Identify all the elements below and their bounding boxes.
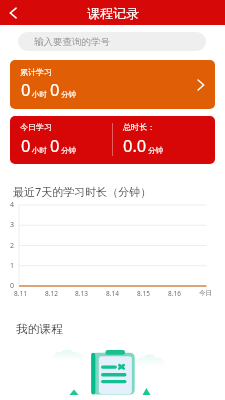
staticText: 2	[10, 241, 15, 251]
staticText: 8.14	[106, 289, 119, 298]
staticText: 分钟	[61, 90, 76, 99]
button[interactable]: 输入要查询的学号	[18, 32, 206, 51]
button[interactable]: Back	[0, 0, 25, 25]
staticText: 0	[21, 134, 31, 156]
staticText: 8.16	[168, 289, 181, 298]
staticText: 今日学习	[20, 122, 52, 132]
staticText: 8.11	[14, 289, 27, 298]
staticText: 小时	[32, 90, 47, 99]
button[interactable]: 累计学习	[10, 60, 215, 109]
staticText: 输入要查询的学号	[34, 36, 110, 48]
staticText: 小时	[32, 146, 47, 155]
staticText: 课程记录	[87, 5, 139, 21]
staticText: 最近7天的学习时长（分钟）	[13, 184, 152, 199]
staticText: 0	[21, 78, 31, 100]
staticText: 1	[10, 261, 15, 271]
staticText: 8.12	[45, 289, 58, 298]
staticText: 今日	[199, 289, 212, 297]
staticText: 0	[50, 134, 60, 156]
staticText: 总时长：	[123, 122, 155, 132]
staticText: 3	[10, 220, 15, 230]
staticText: 8.15	[137, 289, 150, 298]
staticText: 4	[10, 200, 15, 210]
staticText: 0	[10, 281, 15, 291]
staticText: 分钟	[148, 146, 163, 155]
staticText: 我的课程	[16, 322, 63, 337]
staticText: 0.0	[123, 134, 147, 156]
staticText: 累计学习	[20, 67, 52, 77]
staticText: 8.13	[75, 289, 88, 298]
staticText: 0	[50, 78, 60, 100]
staticText: 分钟	[61, 146, 76, 155]
